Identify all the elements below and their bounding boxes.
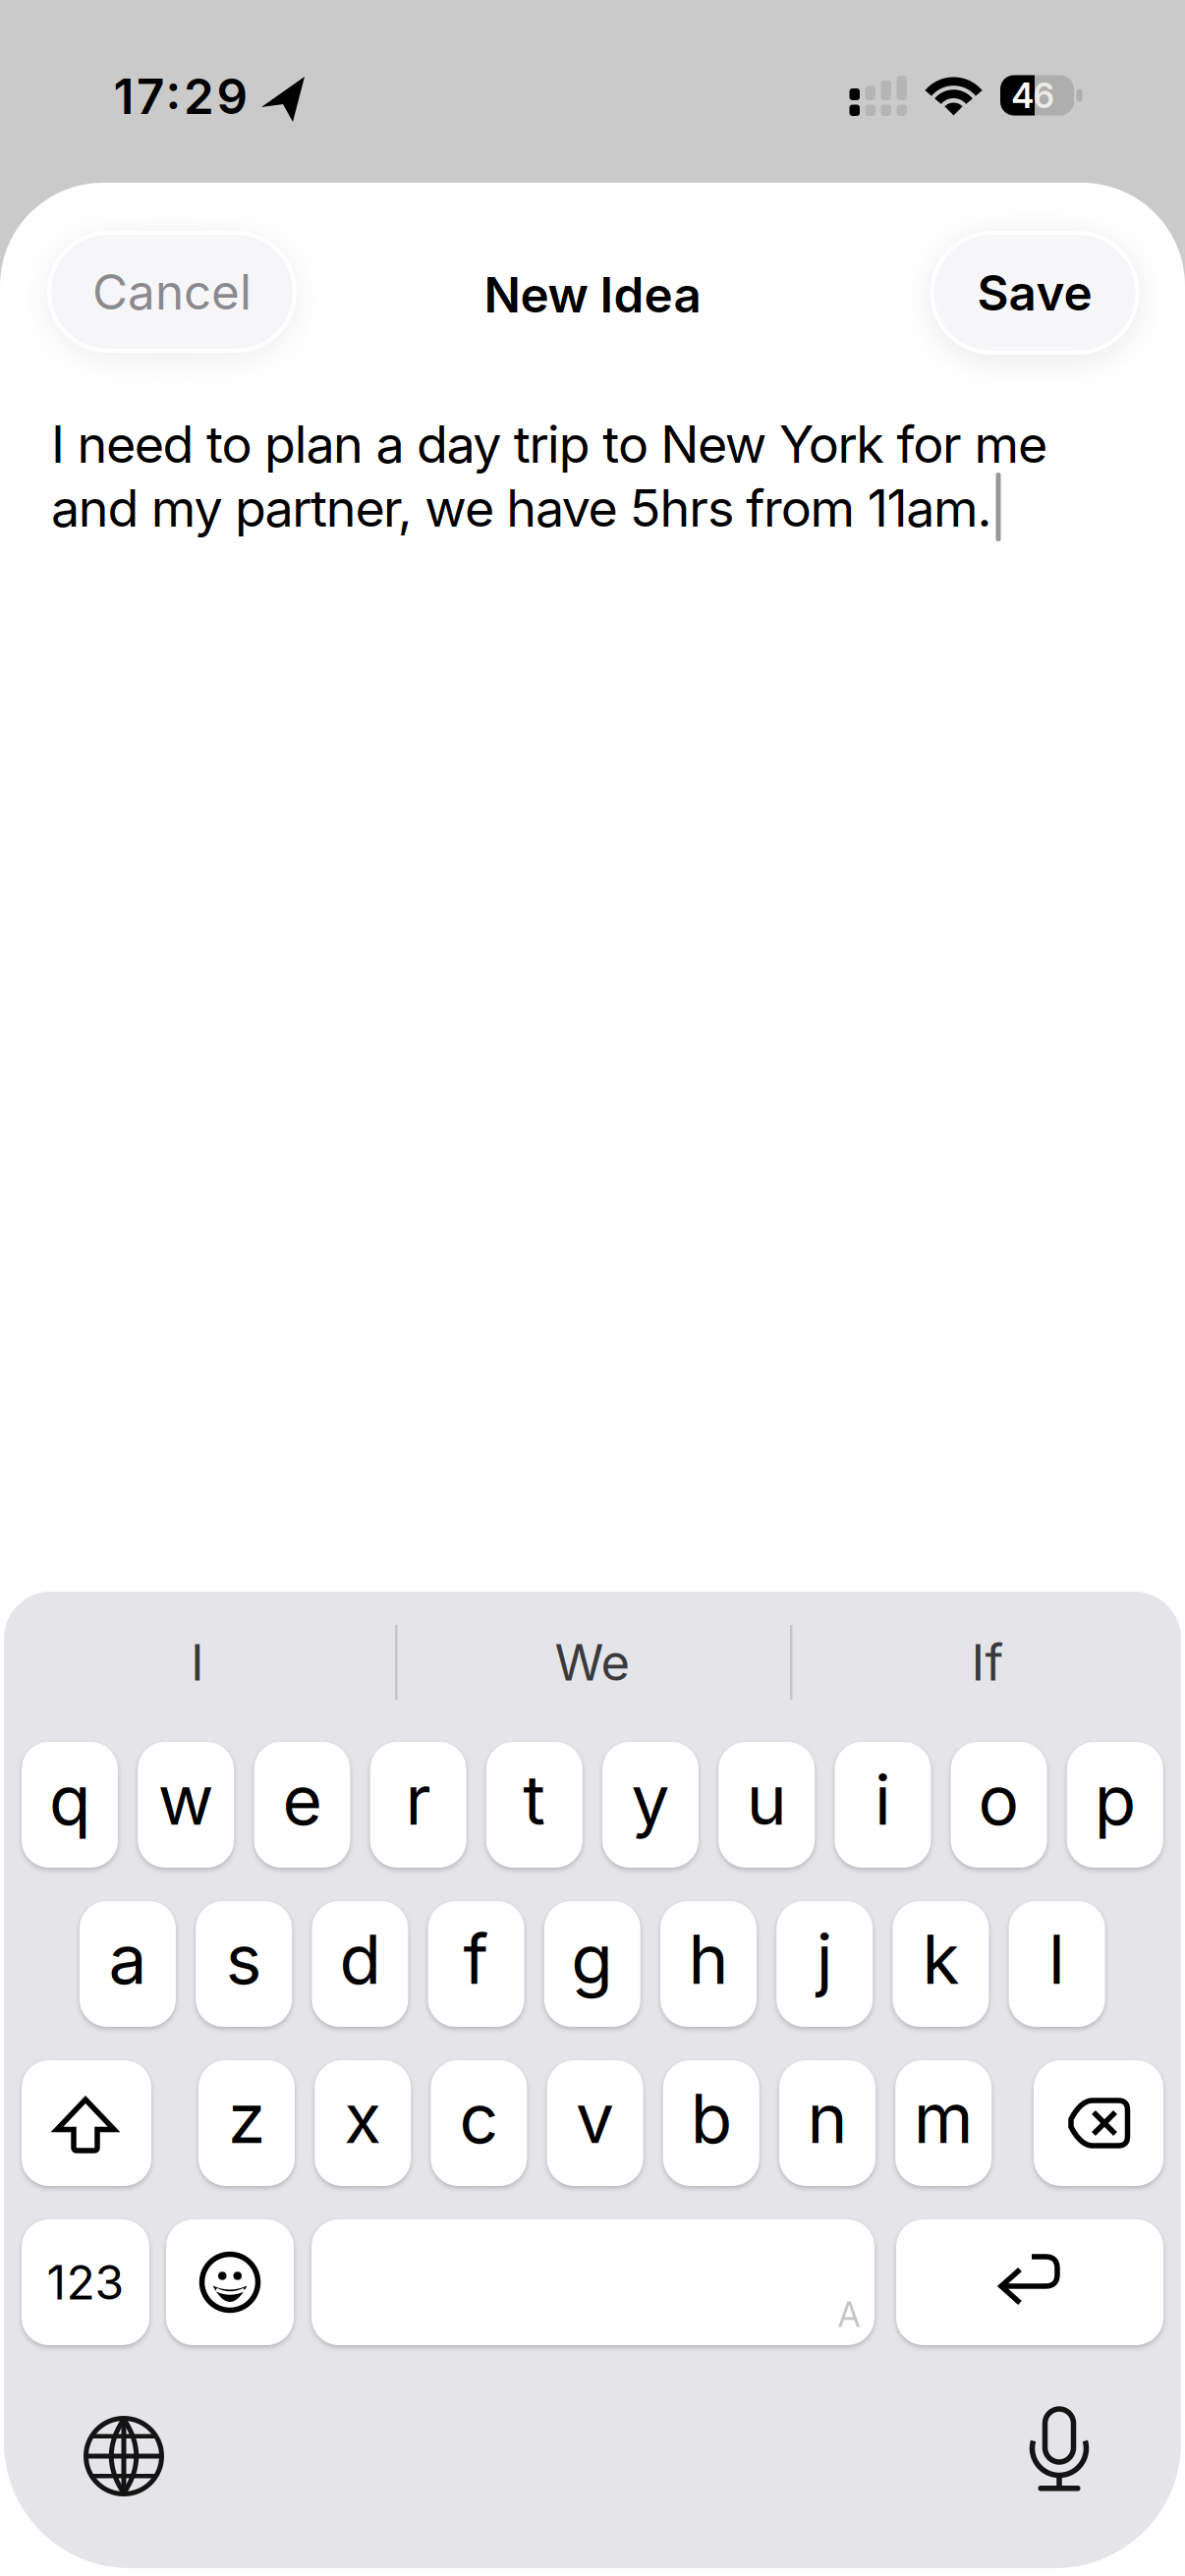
staticText: k [922, 1919, 959, 1999]
button[interactable]: z [198, 2060, 295, 2186]
staticText: I [191, 1633, 204, 1692]
staticText: 6 [1033, 75, 1054, 116]
button[interactable]: e [254, 1742, 350, 1868]
button[interactable]: Shift [22, 2060, 151, 2186]
staticText: Save [977, 264, 1092, 321]
button[interactable]: If [801, 1618, 1174, 1707]
staticText: p [1094, 1760, 1136, 1840]
button[interactable]: t [486, 1742, 582, 1868]
staticText: New Idea [484, 266, 701, 323]
staticText: b [691, 2078, 732, 2158]
button[interactable]: n [779, 2060, 875, 2186]
button[interactable]: We [406, 1618, 779, 1707]
staticText: A [838, 2295, 860, 2335]
staticText: z [228, 2078, 265, 2158]
button[interactable]: b [663, 2060, 759, 2186]
button[interactable]: u [718, 1742, 815, 1868]
staticText: n [807, 2078, 847, 2158]
button[interactable]: r [370, 1742, 466, 1868]
staticText: q [49, 1760, 90, 1840]
button[interactable]: p [1067, 1742, 1163, 1868]
staticText: 4 [1012, 75, 1034, 116]
staticText: a [109, 1919, 147, 1999]
button[interactable]: Emoji [166, 2219, 294, 2345]
staticText: c [459, 2078, 499, 2158]
button[interactable]: s [196, 1901, 292, 2027]
staticText: o [978, 1760, 1020, 1840]
button[interactable]: 123 [22, 2219, 149, 2345]
button[interactable]: Cancel [49, 233, 295, 351]
staticText: I need to plan a day trip to New York fo… [51, 414, 1048, 474]
button[interactable]: o [951, 1742, 1047, 1868]
button[interactable]: Delete [1034, 2060, 1163, 2186]
staticText: h [688, 1919, 729, 1999]
staticText: j [816, 1919, 833, 1999]
staticText: v [576, 2078, 614, 2158]
staticText: s [226, 1919, 262, 1999]
button[interactable]: w [138, 1742, 234, 1868]
button[interactable]: Return [896, 2219, 1163, 2345]
button[interactable]: y [602, 1742, 699, 1868]
button[interactable]: c [431, 2060, 527, 2186]
staticText: x [344, 2078, 381, 2158]
button[interactable]: Next keyboard [86, 2418, 162, 2494]
staticText: g [571, 1919, 613, 1999]
button[interactable]: v [547, 2060, 643, 2186]
button[interactable]: f [428, 1901, 524, 2027]
staticText: w [158, 1760, 214, 1840]
staticText: and my partner, we have 5hrs from 11am. [51, 478, 992, 538]
staticText: m [914, 2078, 973, 2158]
staticText: r [405, 1760, 431, 1840]
button[interactable]: g [544, 1901, 640, 2027]
staticText: We [555, 1633, 630, 1692]
staticText: l [1049, 1919, 1065, 1999]
button[interactable]: I [11, 1618, 384, 1707]
staticText: f [463, 1919, 489, 1999]
staticText: If [971, 1633, 1004, 1692]
button[interactable]: Space [311, 2219, 875, 2345]
staticText: i [874, 1760, 891, 1840]
button[interactable]: Dictation [1027, 2409, 1092, 2497]
button[interactable]: j [776, 1901, 873, 2027]
staticText: d [339, 1919, 381, 1999]
staticText: 17:29 [113, 68, 248, 125]
button[interactable]: i [835, 1742, 931, 1868]
button[interactable]: k [893, 1901, 989, 2027]
staticText: y [631, 1760, 670, 1840]
button[interactable]: h [660, 1901, 757, 2027]
staticText: e [282, 1760, 322, 1840]
button[interactable]: l [1009, 1901, 1105, 2027]
staticText: t [523, 1760, 546, 1840]
button[interactable]: Save [932, 233, 1137, 353]
button[interactable]: q [22, 1742, 118, 1868]
staticText: 123 [47, 2254, 124, 2310]
button[interactable]: m [895, 2060, 992, 2186]
button[interactable]: d [312, 1901, 408, 2027]
button[interactable]: a [80, 1901, 176, 2027]
staticText: u [746, 1760, 787, 1840]
staticText: Cancel [92, 263, 252, 320]
button[interactable]: x [315, 2060, 411, 2186]
